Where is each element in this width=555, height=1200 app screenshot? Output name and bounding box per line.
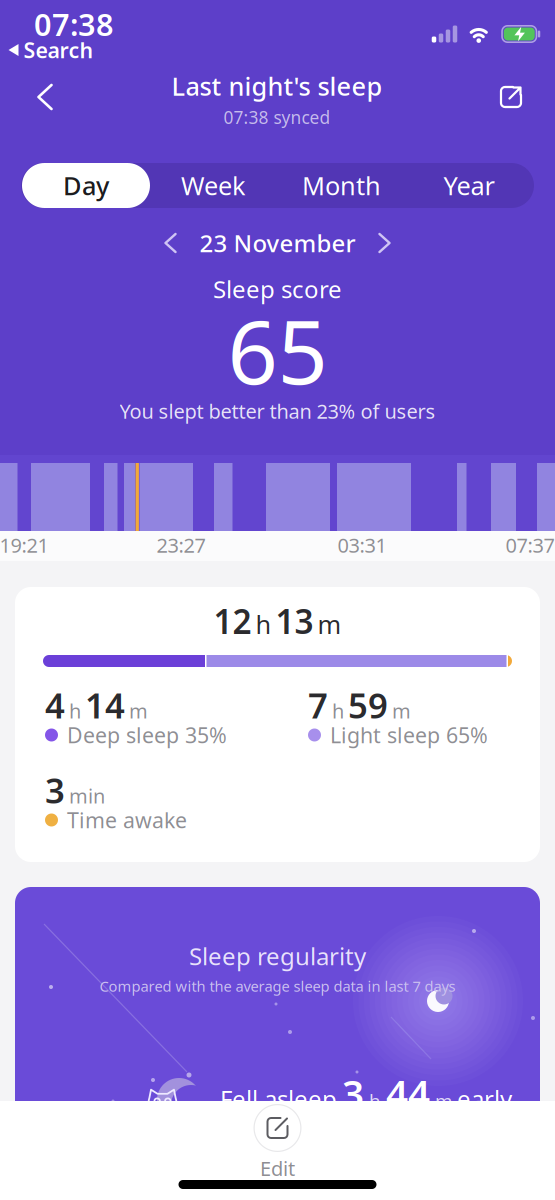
button[interactable]: Year xyxy=(405,163,533,208)
button[interactable]: Previous day xyxy=(161,230,179,256)
button[interactable]: Week xyxy=(149,163,277,208)
staticText: Edit xyxy=(260,1155,295,1182)
staticText: h xyxy=(369,1088,381,1113)
staticText: 12 xyxy=(213,599,251,643)
staticText: 19:21 xyxy=(0,532,48,558)
staticText: h xyxy=(255,607,271,641)
staticText: 23 November xyxy=(199,227,355,259)
button[interactable]: Next day xyxy=(375,230,393,256)
staticText: 07:38 xyxy=(34,4,114,44)
staticText: 3 xyxy=(342,1067,364,1119)
staticText: Fell asleep xyxy=(220,1083,337,1115)
staticText: m xyxy=(129,697,148,724)
staticText: Last night's sleep xyxy=(171,69,382,103)
staticText: 3 xyxy=(45,767,65,813)
staticText: 13 xyxy=(275,599,313,643)
button[interactable]: Month xyxy=(277,163,405,208)
staticText: m xyxy=(317,607,341,641)
staticText: min xyxy=(69,782,105,809)
staticText: 65 xyxy=(227,292,327,408)
staticText: Day xyxy=(63,169,109,202)
staticText: Search xyxy=(23,36,93,64)
staticText: Month xyxy=(302,169,381,202)
staticText: h xyxy=(69,697,81,724)
button[interactable]: Back xyxy=(28,75,61,119)
staticText: m xyxy=(392,697,411,724)
staticText: 59 xyxy=(348,682,388,728)
staticText: Sleep regularity xyxy=(189,940,366,972)
staticText: 07:38 synced xyxy=(223,106,330,129)
staticText: 4 xyxy=(45,682,65,728)
staticText: 14 xyxy=(85,682,125,728)
button[interactable]: Share xyxy=(492,78,530,116)
staticText: Year xyxy=(443,169,494,202)
button[interactable]: Edit xyxy=(253,1101,301,1182)
staticText: m xyxy=(435,1088,452,1113)
staticText: Light sleep 65% xyxy=(330,721,488,749)
button[interactable]: Day xyxy=(22,163,150,208)
button[interactable]: Back to Search xyxy=(8,36,93,64)
staticText: 07:37 xyxy=(505,532,554,558)
staticText: 44 xyxy=(386,1067,430,1119)
staticText: h xyxy=(332,697,344,724)
staticText: Sleep score xyxy=(213,273,342,305)
staticText: Compared with the average sleep data in … xyxy=(99,976,455,996)
staticText: You slept better than 23% of users xyxy=(119,398,435,424)
staticText: Week xyxy=(181,169,246,202)
staticText: 23:27 xyxy=(156,532,205,558)
staticText: Time awake xyxy=(67,806,187,834)
staticText: Deep sleep 35% xyxy=(67,721,227,749)
staticText: 03:31 xyxy=(337,532,386,558)
staticText: 7 xyxy=(308,682,328,728)
staticText: early xyxy=(457,1083,512,1115)
